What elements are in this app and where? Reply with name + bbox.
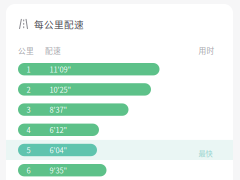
button[interactable]: 4 [6, 120, 233, 140]
button[interactable]: 6 [6, 160, 233, 180]
staticText: 用时 [198, 45, 214, 56]
staticText: 6 [26, 165, 30, 176]
button[interactable]: 3 [6, 99, 233, 120]
staticText: 6'04" [49, 145, 67, 155]
staticText: 4 [26, 124, 30, 135]
staticText: 1 [26, 64, 30, 75]
staticText: 9'35" [49, 165, 67, 176]
staticText: 配速 [45, 45, 61, 56]
staticText: 11'09" [49, 64, 71, 75]
staticText: 每公里配速 [34, 17, 84, 31]
button[interactable]: 1 [6, 59, 233, 79]
staticText: 6'12" [49, 124, 67, 135]
staticText: 公里 [18, 45, 34, 56]
button[interactable]: 5 [6, 140, 233, 160]
staticText: 8'37" [49, 104, 67, 115]
staticText: 最快 [198, 148, 212, 158]
button[interactable]: 2 [6, 79, 233, 99]
staticText: 5 [26, 145, 30, 155]
staticText: 10'25" [49, 84, 71, 95]
staticText: 2 [26, 84, 30, 95]
staticText: 3 [26, 104, 30, 115]
